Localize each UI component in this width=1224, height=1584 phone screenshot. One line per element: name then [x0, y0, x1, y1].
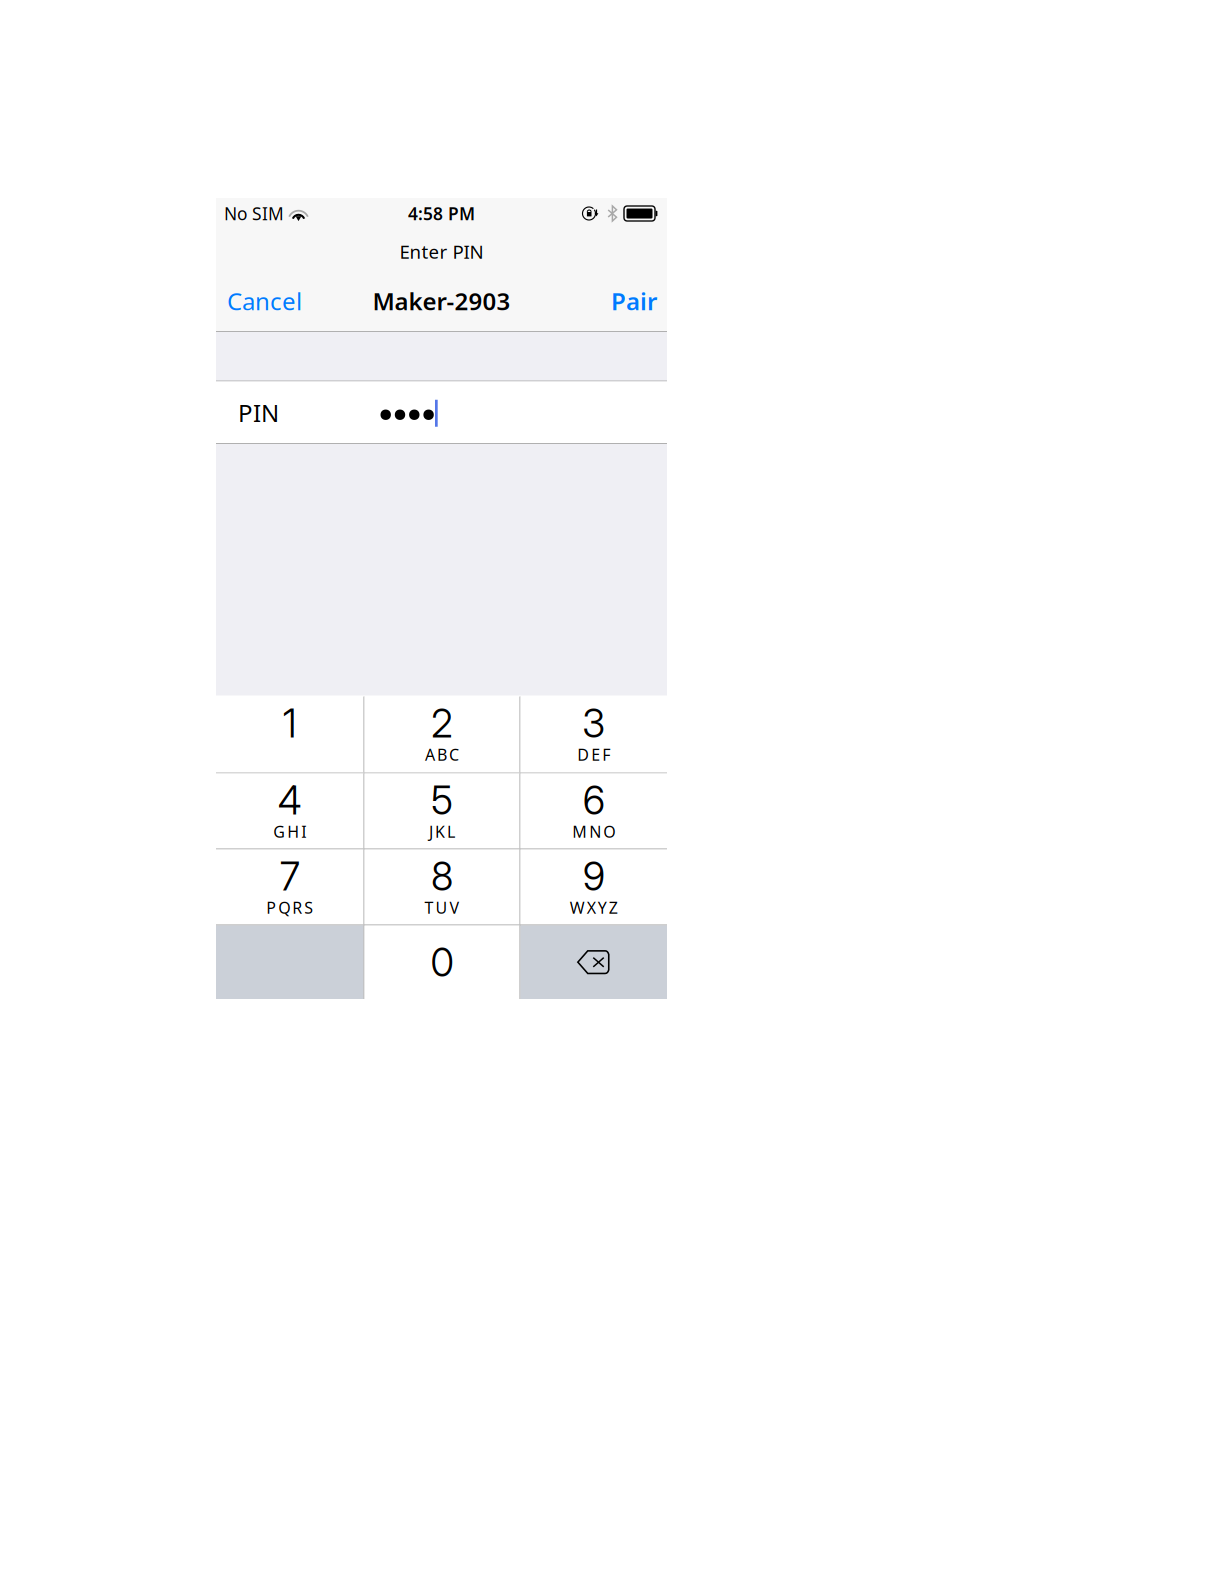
- button[interactable]: 9: [520, 849, 667, 924]
- button[interactable]: 5: [364, 773, 519, 848]
- button[interactable]: 4: [216, 773, 363, 848]
- button[interactable]: 1: [216, 696, 363, 772]
- button[interactable]: Pair: [609, 276, 659, 326]
- staticText: J K L: [429, 821, 455, 842]
- staticText: M N O: [572, 821, 615, 842]
- staticText: 8: [431, 853, 453, 900]
- staticText: Maker-2903: [372, 285, 510, 317]
- staticText: W X Y Z: [570, 897, 618, 918]
- staticText: Enter PIN: [399, 239, 483, 264]
- staticText: T U V: [424, 897, 459, 918]
- button[interactable]: 8: [364, 849, 519, 924]
- staticText: No SIM: [224, 202, 284, 225]
- staticText: A B C: [425, 744, 459, 765]
- staticText: G H I: [273, 821, 306, 842]
- button[interactable]: 0: [364, 925, 519, 999]
- staticText: D E F: [577, 744, 610, 765]
- button[interactable]: 6: [520, 773, 667, 848]
- staticText: PIN: [238, 397, 279, 429]
- button[interactable]: Cancel: [225, 276, 304, 326]
- button[interactable]: 7: [216, 849, 363, 924]
- staticText: 2: [431, 700, 453, 747]
- staticText: 6: [583, 777, 605, 824]
- staticText: 7: [280, 853, 300, 900]
- staticText: 0: [430, 939, 453, 986]
- staticText: 9: [583, 853, 605, 900]
- button[interactable]: Delete: [520, 925, 667, 999]
- button[interactable]: 3: [520, 696, 667, 772]
- staticText: 3: [582, 700, 605, 747]
- staticText: 1: [283, 700, 297, 747]
- staticText: Pair: [611, 285, 657, 317]
- staticText: 5: [431, 777, 453, 824]
- staticText: P Q R S: [266, 897, 313, 918]
- staticText: Cancel: [227, 285, 302, 317]
- staticText: 4:58 PM: [408, 202, 475, 225]
- staticText: 4: [278, 777, 302, 824]
- button[interactable]: 2: [364, 696, 519, 772]
